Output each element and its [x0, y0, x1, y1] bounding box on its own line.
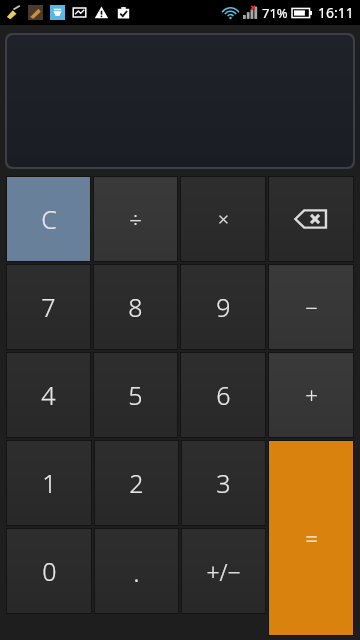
button[interactable]: 0: [7, 529, 91, 613]
staticText: 5: [128, 378, 143, 412]
button[interactable]: .: [95, 529, 178, 613]
staticText: 2: [129, 466, 144, 500]
button[interactable]: +: [269, 353, 353, 437]
button[interactable]: 8: [94, 265, 177, 349]
staticText: 4: [41, 378, 56, 412]
staticText: −: [305, 292, 318, 322]
staticText: 0: [42, 554, 57, 588]
button[interactable]: 6: [181, 353, 265, 437]
staticText: +: [305, 380, 318, 410]
staticText: .: [133, 554, 140, 589]
staticText: 71%: [262, 4, 288, 22]
button[interactable]: C: [7, 177, 90, 261]
staticText: ×: [218, 206, 229, 232]
staticText: 8: [128, 290, 143, 324]
button[interactable]: ×: [181, 177, 265, 261]
button[interactable]: 1: [7, 441, 91, 525]
button[interactable]: Backspace: [269, 177, 353, 261]
button[interactable]: +/−: [182, 529, 265, 613]
button[interactable]: 7: [7, 265, 90, 349]
staticText: =: [305, 523, 318, 553]
staticText: 9: [216, 290, 231, 324]
staticText: 7: [41, 290, 56, 324]
button[interactable]: 4: [7, 353, 90, 437]
button[interactable]: ÷: [94, 177, 177, 261]
button[interactable]: 5: [94, 353, 177, 437]
staticText: C: [41, 202, 57, 236]
button[interactable]: 3: [182, 441, 265, 525]
button[interactable]: 9: [181, 265, 265, 349]
button[interactable]: =: [269, 441, 353, 635]
staticText: 3: [216, 466, 231, 500]
button[interactable]: −: [269, 265, 353, 349]
staticText: 1: [42, 466, 57, 500]
staticText: 16:11: [318, 3, 354, 22]
staticText: +/−: [206, 556, 241, 587]
staticText: ÷: [129, 204, 142, 234]
staticText: 6: [216, 378, 231, 412]
button[interactable]: 2: [95, 441, 178, 525]
